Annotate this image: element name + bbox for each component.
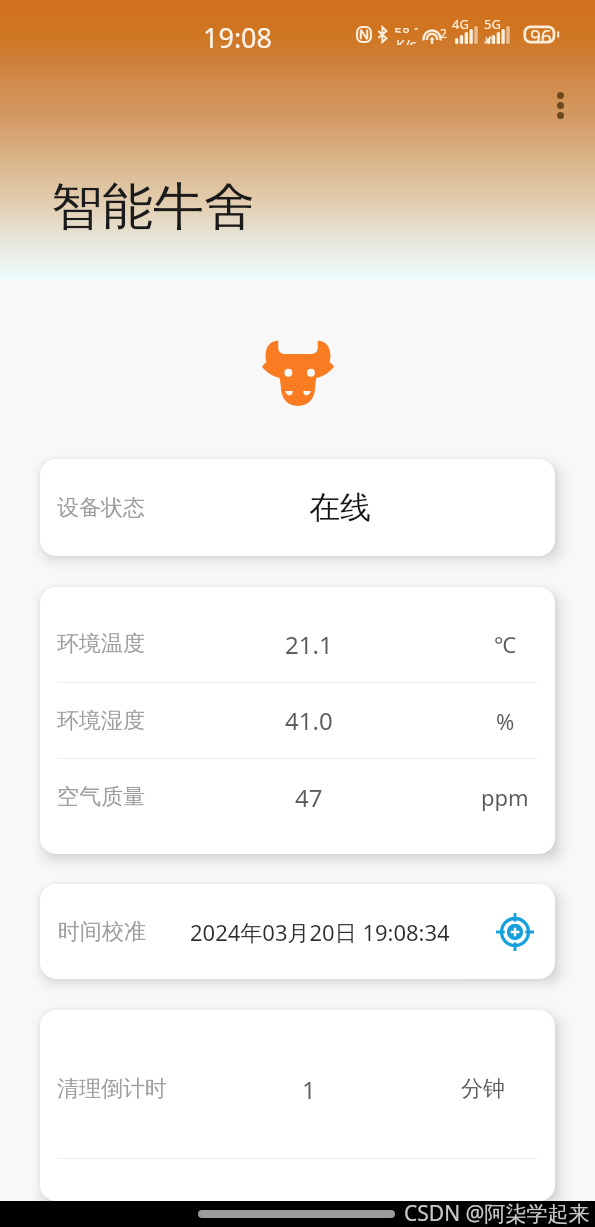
staticText: 2024年03月20日 19:08:34 (190, 917, 450, 947)
button[interactable]: Sync time (493, 910, 537, 954)
staticText: 41.0 (285, 704, 333, 737)
staticText: 在线 (309, 488, 371, 527)
staticText: 1 (302, 1073, 316, 1106)
staticText: 环境温度 (57, 630, 145, 658)
staticText: 2 (440, 25, 447, 41)
staticText: 19:08 (203, 19, 273, 56)
button[interactable]: More options (543, 78, 578, 133)
staticText: 47 (295, 781, 323, 814)
staticText: 设备状态 (57, 494, 145, 522)
button[interactable]: 设备状态 (40, 459, 555, 556)
staticText: 58.2 (394, 23, 418, 33)
staticText: 时间校准 (58, 918, 146, 946)
staticText: 21.1 (285, 628, 333, 661)
staticText: 96 (530, 24, 552, 43)
staticText: CSDN @阿柒学起来 (404, 1199, 590, 1227)
button[interactable]: 环境温度 (40, 606, 555, 682)
staticText: K/s (396, 35, 417, 45)
button[interactable]: 环境湿度 (40, 683, 555, 758)
staticText: ppm (481, 782, 529, 812)
staticText: 分钟 (461, 1075, 505, 1103)
staticText: 智能牛舍 (51, 175, 255, 239)
staticText: 清理倒计时 (57, 1075, 167, 1103)
button[interactable]: 空气质量 (40, 759, 555, 835)
staticText: 5G (484, 15, 501, 33)
staticText: 环境湿度 (57, 707, 145, 735)
staticText: 空气质量 (57, 783, 145, 811)
staticText: 4G (452, 15, 469, 33)
staticText: ℃ (494, 629, 516, 659)
staticText: % (496, 706, 515, 736)
button[interactable]: 清理倒计时 (40, 1034, 555, 1144)
